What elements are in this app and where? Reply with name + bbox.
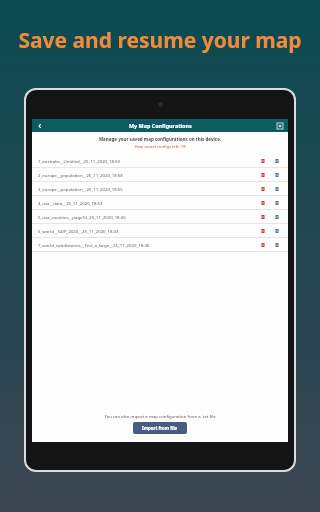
button[interactable]: Export configuration: [272, 156, 282, 166]
staticText: 7_world_subdivisions__Test_a_large__25_1…: [38, 242, 258, 248]
button[interactable]: 4_usa__data__25_11_2020_18:53: [32, 196, 288, 209]
button[interactable]: 1_australia__Untitled__25_11_2020_18:59: [32, 154, 288, 167]
button[interactable]: Export configuration: [272, 212, 282, 222]
button[interactable]: Export configuration: [272, 170, 282, 180]
staticText: Manage your saved map configurations on …: [32, 136, 288, 142]
staticText: 5_usa_counties__page53_25_11_2020_18:46: [38, 214, 258, 220]
button[interactable]: How saved configs left: 18: [32, 144, 288, 150]
button[interactable]: Export configuration: [272, 198, 282, 208]
staticText: You can also import a map configuration …: [32, 413, 288, 419]
button[interactable]: Delete configuration: [258, 240, 268, 250]
staticText: 3_europe__population__25_11_2020_18:55: [38, 186, 258, 192]
button[interactable]: 2_europe__population__25_11_2020_18:58: [32, 168, 288, 181]
button[interactable]: 7_world_subdivisions__Test_a_large__25_1…: [32, 238, 288, 251]
staticText: 2_europe__population__25_11_2020_18:58: [38, 172, 258, 178]
button[interactable]: Back: [32, 119, 48, 132]
button[interactable]: 3_europe__population__25_11_2020_18:55: [32, 182, 288, 195]
button[interactable]: Delete configuration: [258, 212, 268, 222]
button[interactable]: Delete configuration: [258, 156, 268, 166]
button[interactable]: 6_world__GDP_2020__25_11_2020_18:43: [32, 224, 288, 237]
button[interactable]: 5_usa_counties__page53_25_11_2020_18:46: [32, 210, 288, 223]
staticText: 6_world__GDP_2020__25_11_2020_18:43: [38, 228, 258, 234]
button[interactable]: Delete configuration: [258, 226, 268, 236]
button[interactable]: Export configuration: [272, 184, 282, 194]
button[interactable]: Delete configuration: [258, 170, 268, 180]
button[interactable]: Delete configuration: [258, 198, 268, 208]
button[interactable]: Save configuration: [272, 119, 288, 132]
staticText: Import from file: [142, 425, 178, 431]
button[interactable]: Export configuration: [272, 226, 282, 236]
staticText: My Map Configurations: [129, 122, 192, 129]
staticText: 4_usa__data__25_11_2020_18:53: [38, 200, 258, 206]
button[interactable]: Import from file: [133, 422, 187, 434]
staticText: 1_australia__Untitled__25_11_2020_18:59: [38, 158, 258, 164]
button[interactable]: Delete configuration: [258, 184, 268, 194]
staticText: Save and resume your map: [18, 26, 302, 55]
button[interactable]: Export configuration: [272, 240, 282, 250]
